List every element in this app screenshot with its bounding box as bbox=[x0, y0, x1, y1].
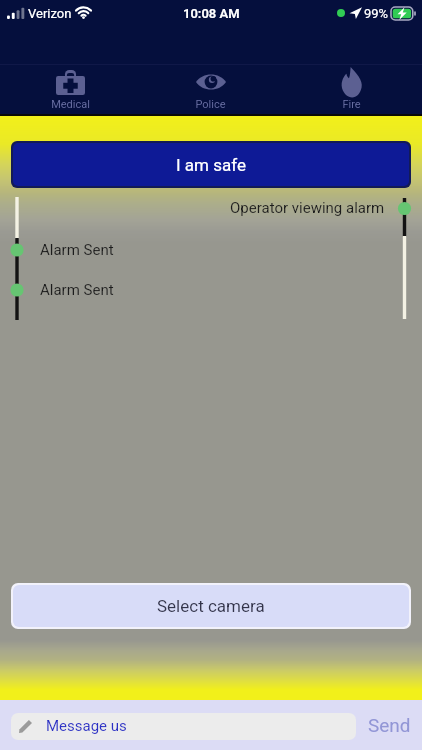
staticText: Fire bbox=[342, 98, 361, 111]
button[interactable]: Send bbox=[360, 700, 422, 750]
button[interactable]: Fire bbox=[281, 28, 422, 114]
staticText: 99% bbox=[364, 6, 389, 21]
staticText: Police bbox=[195, 98, 226, 111]
other: Cellular signal bbox=[7, 7, 25, 19]
staticText: Verizon bbox=[28, 6, 72, 21]
button[interactable]: Medical bbox=[0, 28, 140, 114]
button[interactable]: Select camera bbox=[13, 585, 409, 627]
other: Battery charging 99 percent bbox=[391, 7, 417, 20]
button[interactable]: I am safe bbox=[13, 143, 409, 186]
staticText: Select camera bbox=[157, 596, 265, 616]
staticText: Medical bbox=[51, 98, 90, 111]
staticText: Send bbox=[368, 714, 411, 736]
other: Edit message bbox=[19, 720, 32, 733]
staticText: Message us bbox=[46, 717, 127, 735]
button[interactable]: Police bbox=[140, 28, 281, 114]
other: Location in use bbox=[349, 6, 362, 19]
staticText: Alarm Sent bbox=[40, 281, 114, 299]
other: Wi-Fi bbox=[75, 7, 92, 19]
button[interactable]: Edit message bbox=[11, 713, 356, 740]
staticText: I am safe bbox=[176, 155, 246, 175]
staticText: Operator viewing alarm bbox=[230, 199, 385, 217]
staticText: Alarm Sent bbox=[40, 241, 114, 259]
staticText: 10:08 AM bbox=[183, 6, 240, 21]
